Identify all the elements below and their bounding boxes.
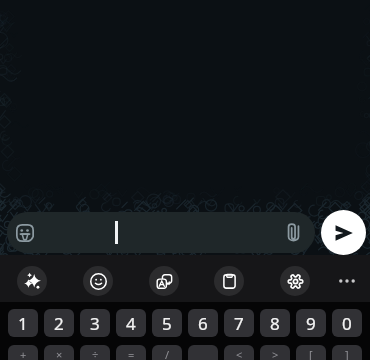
button[interactable]: ]: [332, 345, 362, 360]
button[interactable]: ×: [44, 345, 74, 360]
staticText: 4: [126, 312, 136, 335]
button[interactable]: 0: [332, 309, 362, 337]
button[interactable]: [: [296, 345, 326, 360]
button[interactable]: Attach: [273, 212, 314, 253]
staticText: >: [272, 347, 279, 360]
button[interactable]: 5: [152, 309, 182, 337]
staticText: ]: [345, 347, 349, 360]
button[interactable]: Translate: [149, 266, 179, 296]
staticText: [: [309, 347, 313, 360]
staticText: /: [165, 347, 170, 360]
button[interactable]: Stickers: [7, 212, 43, 253]
button[interactable]: 3: [80, 309, 110, 337]
staticText: 3: [90, 312, 100, 335]
button[interactable]: +: [8, 345, 38, 360]
button[interactable]: Clipboard: [214, 266, 244, 296]
staticText: =: [128, 347, 135, 360]
staticText: 0: [342, 312, 352, 335]
button[interactable]: 2: [44, 309, 74, 337]
staticText: 1: [18, 312, 28, 335]
button[interactable]: 8: [260, 309, 290, 337]
button[interactable]: 4: [116, 309, 146, 337]
button[interactable]: 1: [8, 309, 38, 337]
staticText: +: [20, 347, 27, 360]
button[interactable]: >: [260, 345, 290, 360]
button[interactable]: Emoji: [83, 266, 113, 296]
button[interactable]: _: [188, 345, 218, 360]
button[interactable]: 7: [224, 309, 254, 337]
staticText: 5: [162, 312, 172, 335]
staticText: 7: [234, 312, 244, 335]
button[interactable]: AI suggestions: [17, 266, 47, 296]
staticText: <: [236, 347, 243, 360]
staticText: ×: [56, 347, 63, 360]
button[interactable]: 6: [188, 309, 218, 337]
staticText: 8: [270, 312, 280, 335]
button[interactable]: =: [116, 345, 146, 360]
button[interactable]: <: [224, 345, 254, 360]
button[interactable]: Stickers: [7, 212, 315, 253]
button[interactable]: Send: [321, 210, 366, 255]
staticText: 2: [54, 312, 64, 335]
button[interactable]: More options: [332, 266, 362, 296]
button[interactable]: ÷: [80, 345, 110, 360]
staticText: 6: [198, 312, 208, 335]
staticText: ÷: [92, 347, 99, 360]
button[interactable]: /: [152, 345, 182, 360]
button[interactable]: Settings: [280, 266, 310, 296]
button[interactable]: 9: [296, 309, 326, 337]
staticText: 9: [306, 312, 316, 335]
